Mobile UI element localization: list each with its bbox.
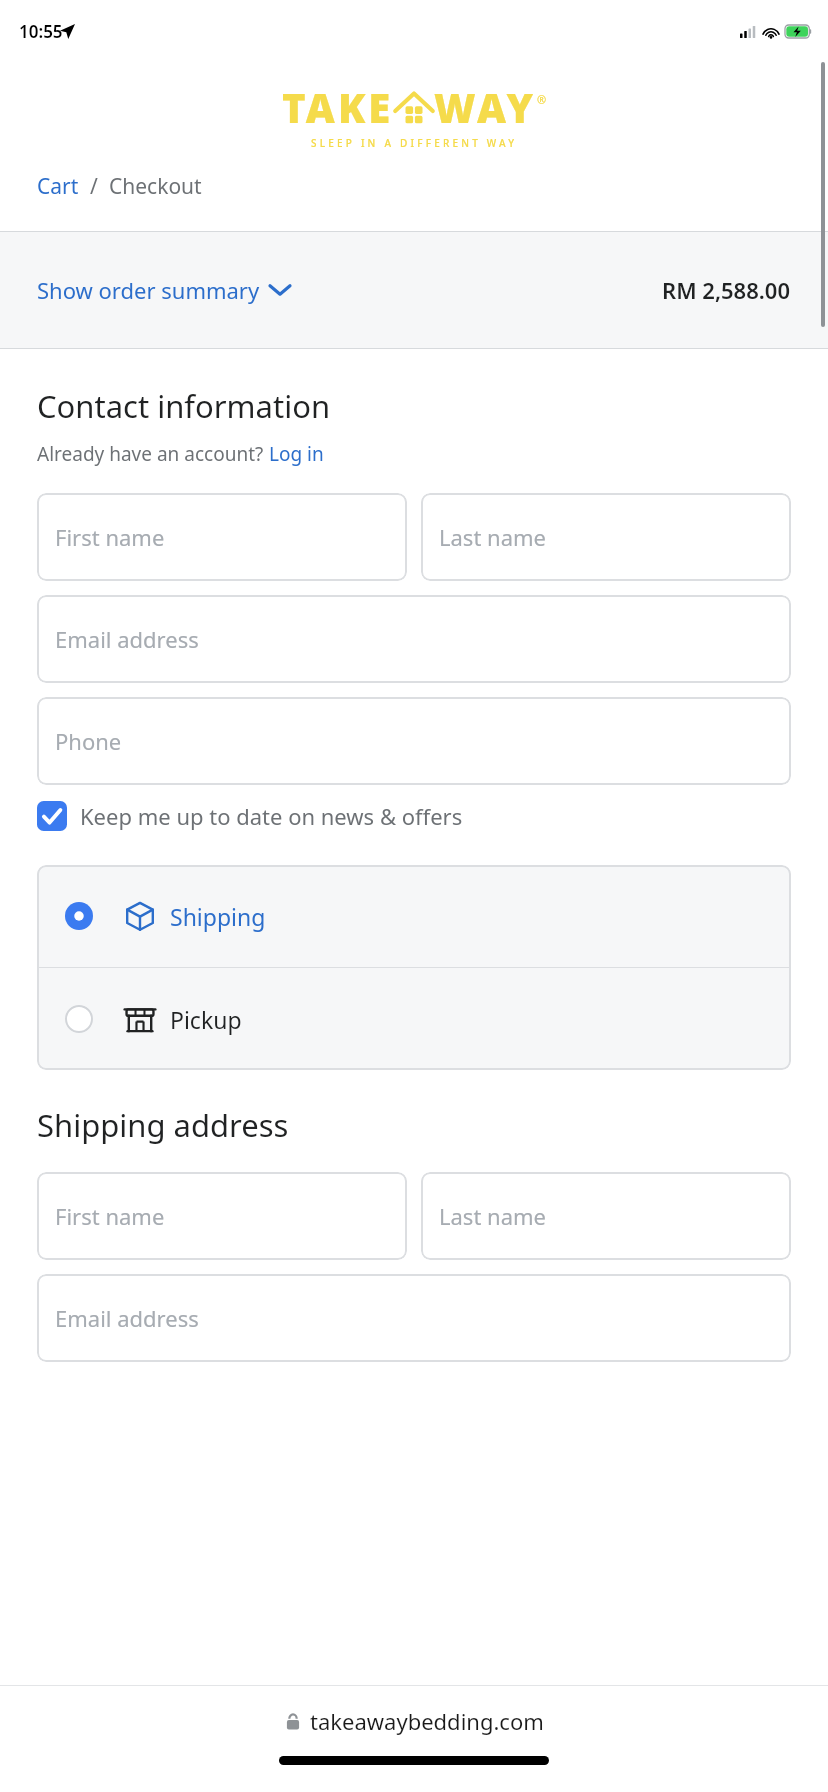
staticText: Shipping (170, 901, 266, 932)
button[interactable]: Log in (269, 441, 324, 467)
staticText: WAY (434, 80, 537, 134)
staticText: Phone (55, 726, 122, 756)
staticText: Contact information (37, 385, 331, 427)
button[interactable]: Phone (37, 697, 791, 785)
staticText: First name (55, 522, 165, 552)
staticText: Show order summary (37, 275, 260, 305)
staticText: TAKE (282, 80, 394, 134)
button[interactable]: Email address (37, 595, 791, 683)
button[interactable]: Show order summary (0, 232, 828, 348)
staticText: Keep me up to date on news & offers (80, 801, 463, 831)
staticText: Email address (55, 624, 199, 654)
button[interactable]: Shipping (37, 865, 791, 967)
staticText: 10:55 (19, 20, 63, 43)
staticText: RM 2,588.00 (662, 275, 791, 305)
staticText: / (79, 172, 109, 201)
staticText: Last name (439, 522, 546, 552)
button[interactable]: Last name (421, 1172, 791, 1260)
button[interactable]: Keep me up to date on news & offers (37, 801, 791, 831)
staticText: SLEEP IN A DIFFERENT WAY (311, 136, 518, 150)
staticText: Email address (55, 1303, 199, 1333)
button[interactable]: takeawaybedding.com (285, 1706, 544, 1736)
staticText: Shipping address (37, 1104, 289, 1146)
staticText: ® (537, 92, 547, 107)
button[interactable]: Cart (37, 172, 79, 201)
staticText: takeawaybedding.com (310, 1706, 544, 1736)
staticText: Already have an account? (37, 441, 269, 467)
button[interactable]: Pickup (37, 968, 791, 1070)
button[interactable]: Last name (421, 493, 791, 581)
staticText: Checkout (109, 172, 202, 201)
button[interactable]: Email address (37, 1274, 791, 1362)
button[interactable]: First name (37, 1172, 407, 1260)
staticText: First name (55, 1201, 165, 1231)
button[interactable]: First name (37, 493, 407, 581)
staticText: Last name (439, 1201, 546, 1231)
staticText: Pickup (170, 1004, 242, 1035)
